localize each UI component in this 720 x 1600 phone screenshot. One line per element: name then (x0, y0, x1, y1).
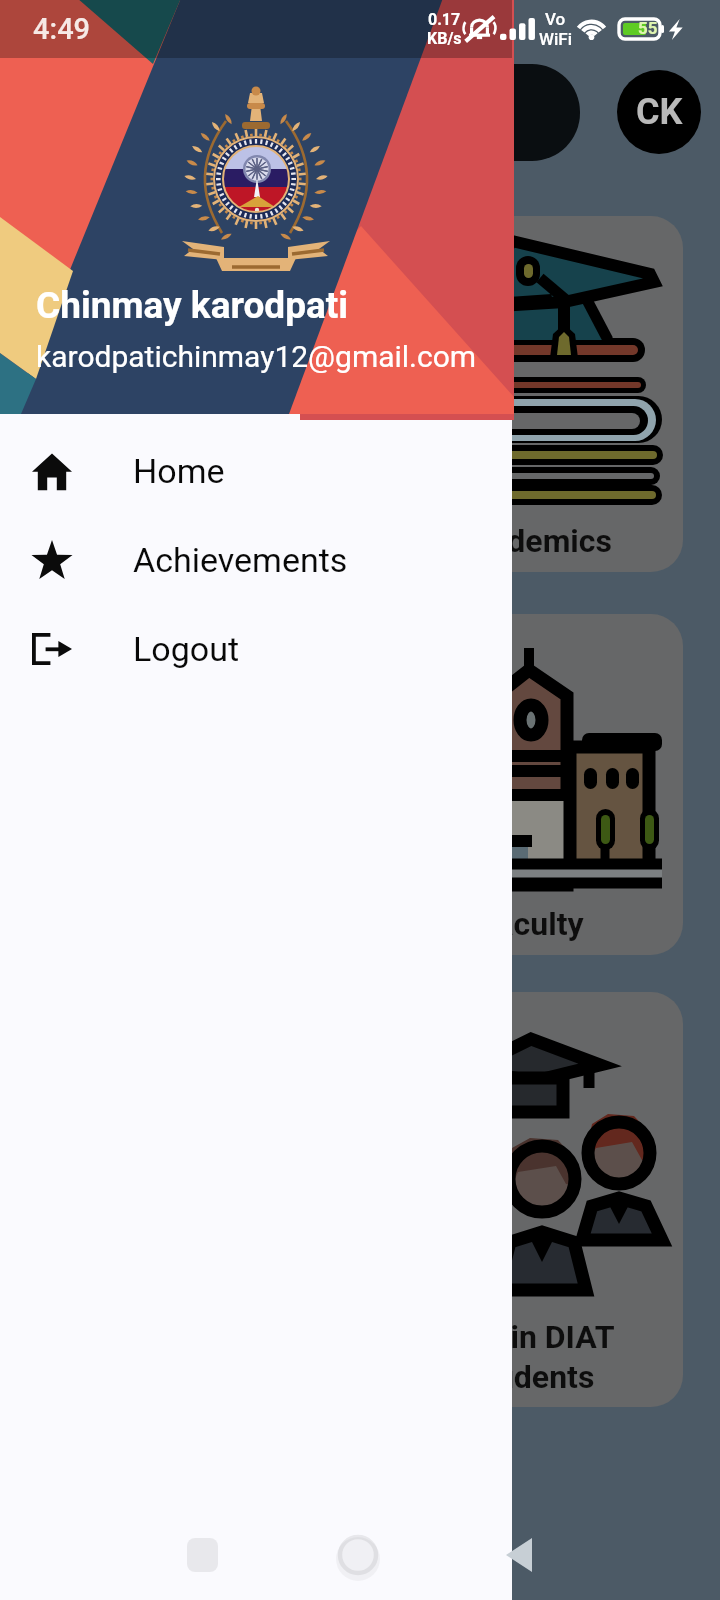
staticText: WiFi (539, 29, 572, 49)
button[interactable]: Life in DIAT students (380, 992, 683, 1407)
staticText: Vo (545, 9, 566, 29)
staticText: CK (636, 91, 683, 133)
staticText: Academics (452, 522, 612, 560)
staticText: karodpatichinmay12@gmail.com (36, 339, 477, 374)
button[interactable]: Achievements (0, 515, 512, 604)
button[interactable]: Faculty (380, 614, 683, 955)
staticText: Faculty (479, 905, 584, 943)
staticText: 4:49 (33, 12, 91, 46)
staticText: Achievements (133, 540, 348, 580)
staticText: KB/s (427, 29, 462, 48)
button[interactable]: Home (0, 426, 512, 515)
button[interactable]: Academics (380, 216, 683, 572)
staticText: Logout (133, 629, 240, 669)
button[interactable] (36, 64, 580, 161)
button[interactable]: Logout (0, 604, 512, 693)
staticText: 55 (638, 18, 658, 38)
staticText: 0.17 (428, 10, 461, 29)
staticText: Chinmay karodpati (36, 284, 349, 327)
staticText: Life in DIAT students (448, 1318, 615, 1395)
staticText: Home (133, 451, 225, 491)
button[interactable]: CK (617, 70, 701, 154)
